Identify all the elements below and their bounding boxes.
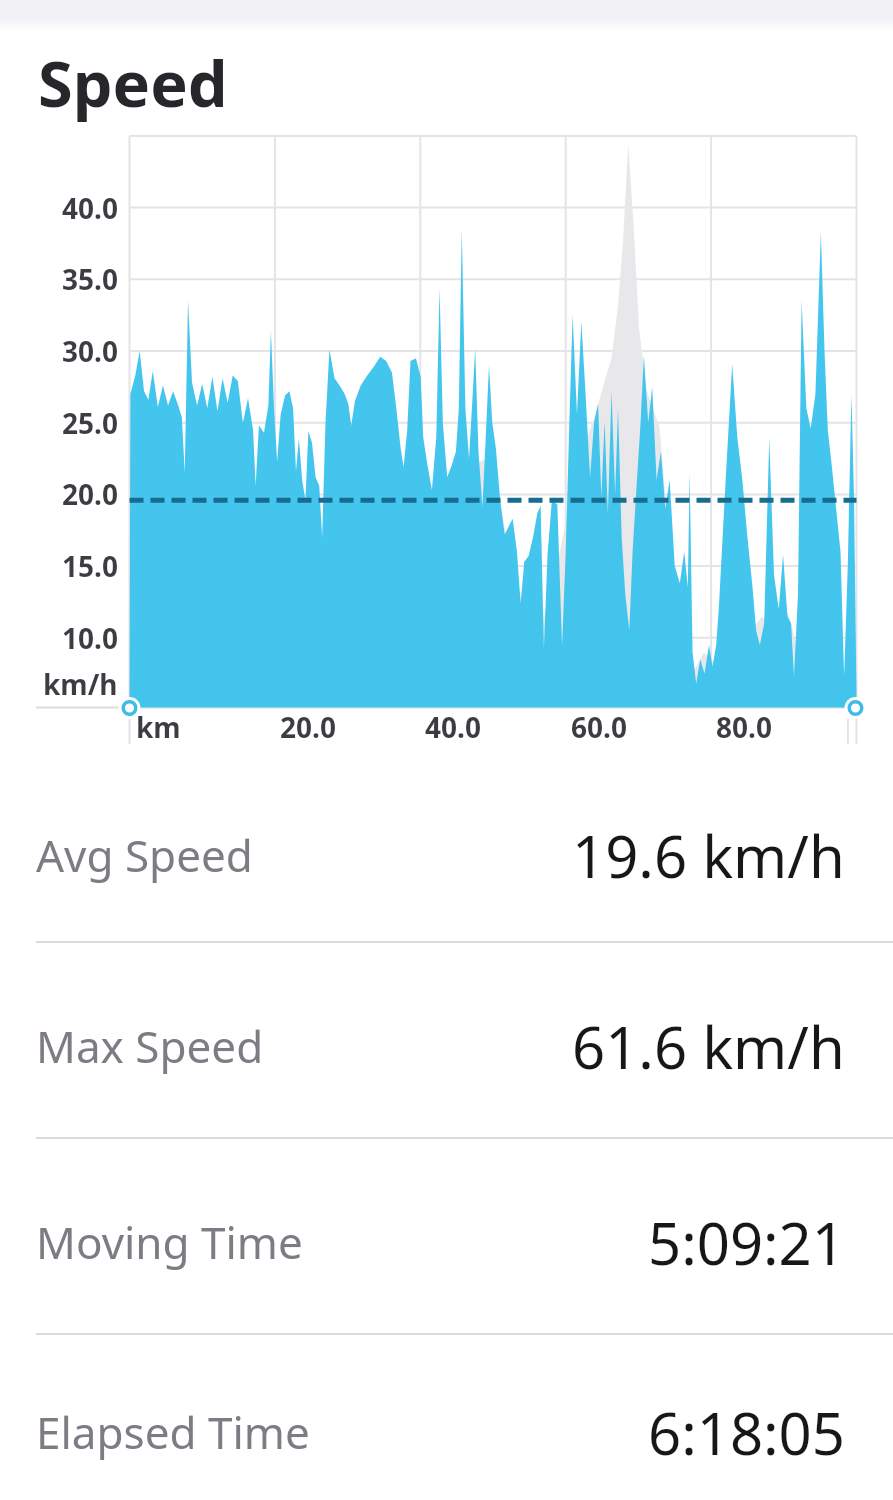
staticText: 60.0	[571, 708, 627, 746]
staticText: Speed	[38, 40, 228, 126]
staticText: 80.0	[716, 708, 772, 746]
button[interactable]	[0, 949, 893, 1143]
staticText: Elapsed Time	[36, 1402, 310, 1462]
staticText: 20.0	[280, 708, 336, 746]
staticText: 20.0	[62, 475, 118, 513]
staticText: 19.6 km/h	[572, 816, 845, 895]
staticText: Moving Time	[36, 1212, 303, 1272]
staticText: 40.0	[425, 708, 481, 746]
staticText: km/h	[43, 665, 118, 703]
staticText: 10.0	[62, 619, 118, 657]
staticText: 5:09:21	[648, 1203, 845, 1282]
button[interactable]	[0, 758, 893, 952]
button[interactable]	[0, 1145, 893, 1339]
staticText: 61.6 km/h	[572, 1007, 845, 1086]
staticText: 25.0	[62, 404, 118, 442]
button[interactable]	[0, 1335, 893, 1500]
staticText: 40.0	[62, 189, 118, 227]
staticText: Avg Speed	[36, 825, 253, 885]
staticText: 6:18:05	[648, 1393, 845, 1472]
staticText: Max Speed	[36, 1016, 264, 1076]
staticText: 35.0	[62, 260, 118, 298]
staticText: km	[136, 708, 181, 746]
staticText: 15.0	[62, 547, 118, 585]
staticText: 30.0	[62, 332, 118, 370]
